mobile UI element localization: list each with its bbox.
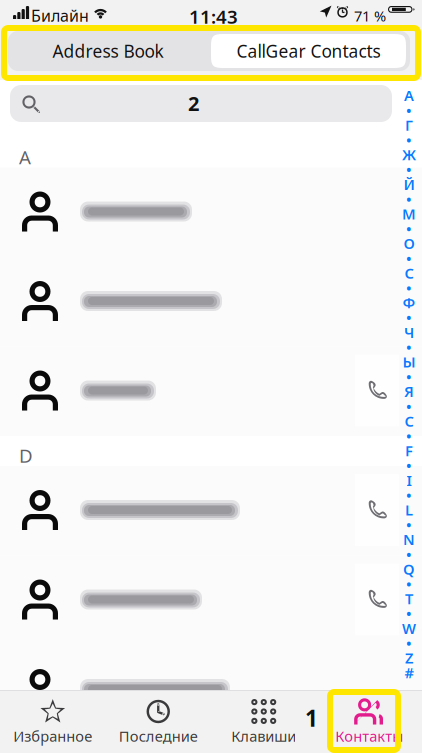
staticText: • xyxy=(406,456,412,475)
button[interactable]: Клавиши xyxy=(211,690,316,753)
staticText: Й xyxy=(403,174,414,194)
staticText: • xyxy=(406,396,412,416)
staticText: • xyxy=(406,278,412,298)
button[interactable] xyxy=(0,346,422,436)
button[interactable]: Контакты xyxy=(316,690,422,753)
staticText: • xyxy=(406,337,412,357)
staticText: • xyxy=(406,426,412,446)
staticText: A xyxy=(19,144,31,169)
staticText: N xyxy=(403,530,415,549)
staticText: • xyxy=(406,604,412,623)
staticText: I xyxy=(406,470,411,490)
button[interactable]: Call xyxy=(355,563,399,635)
button[interactable] xyxy=(0,167,422,257)
staticText: • xyxy=(406,219,412,238)
staticText: Избранное xyxy=(13,726,92,746)
staticText: Клавиши xyxy=(231,726,296,746)
staticText: F xyxy=(405,441,413,460)
staticText: С xyxy=(404,263,413,283)
staticText: Контакты xyxy=(335,726,403,746)
button[interactable]: Address Book xyxy=(8,31,208,71)
staticText: • xyxy=(406,574,412,594)
staticText: • xyxy=(406,248,412,268)
staticText: • xyxy=(406,130,412,150)
staticText: 71 % xyxy=(354,6,386,25)
button[interactable]: Call xyxy=(355,474,399,546)
staticText: Последние xyxy=(119,726,198,746)
staticText: • xyxy=(406,189,412,209)
button[interactable]: Последние xyxy=(105,690,211,753)
staticText: L xyxy=(405,500,413,520)
button[interactable] xyxy=(0,466,422,555)
staticText: # xyxy=(404,663,413,682)
staticText: Z xyxy=(405,648,413,668)
button[interactable] xyxy=(0,645,422,734)
staticText: Я xyxy=(404,382,414,401)
staticText: Билайн xyxy=(31,5,89,26)
staticText: • xyxy=(406,367,412,386)
staticText: C xyxy=(404,411,413,431)
button[interactable]: Call xyxy=(355,354,399,426)
staticText: • xyxy=(406,308,412,327)
staticText: • xyxy=(406,515,412,534)
staticText: 11:43 xyxy=(189,4,238,29)
staticText: W xyxy=(402,618,416,638)
staticText: 1 xyxy=(305,703,318,733)
staticText: • xyxy=(406,100,412,120)
staticText: Ы xyxy=(402,352,415,372)
staticText: D xyxy=(19,443,33,468)
button[interactable] xyxy=(0,555,422,645)
staticText: • xyxy=(406,485,412,505)
staticText: • xyxy=(406,160,412,179)
staticText: Ф xyxy=(402,293,415,312)
staticText: О xyxy=(403,234,414,253)
staticText: CallGear Contacts xyxy=(236,39,380,62)
staticText: Ч xyxy=(404,322,414,342)
staticText: • xyxy=(406,633,412,653)
staticText: 2 xyxy=(188,90,199,117)
staticText: Ж xyxy=(402,145,416,164)
staticText: Q xyxy=(403,559,415,579)
button[interactable]: CallGear Contacts xyxy=(211,34,406,68)
staticText: Address Book xyxy=(52,39,163,62)
button[interactable] xyxy=(0,257,422,346)
staticText: Г xyxy=(405,115,413,135)
staticText: М xyxy=(402,204,416,224)
staticText: • xyxy=(406,544,412,564)
staticText: T xyxy=(405,589,413,608)
staticText: A xyxy=(404,86,414,105)
button[interactable]: Избранное xyxy=(0,690,105,753)
